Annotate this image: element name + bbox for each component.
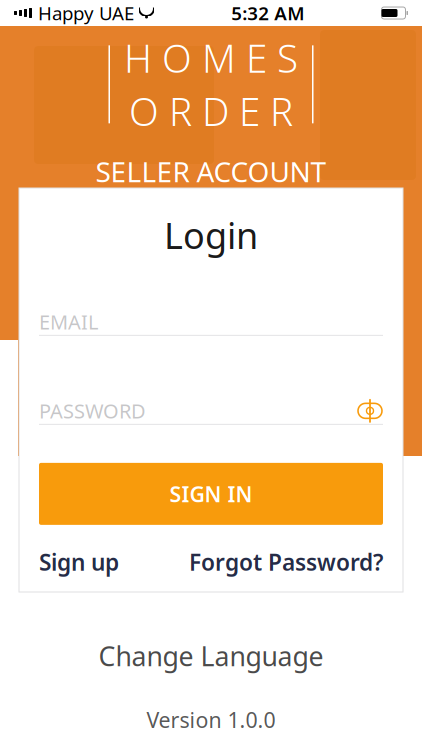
staticText: 5:32 AM (231, 1, 304, 25)
button[interactable]: Show password (357, 401, 383, 421)
staticText: PASSWORD (39, 398, 146, 424)
staticText: Sign up (39, 547, 119, 577)
button[interactable]: Sign up (39, 547, 119, 577)
staticText: H O M E S (124, 32, 298, 83)
staticText: Happy UAE (38, 1, 134, 25)
button[interactable]: SIGN IN (39, 463, 383, 525)
button[interactable]: Change Language (98, 638, 323, 674)
staticText: O R D E R (129, 85, 293, 137)
staticText: Change Language (98, 638, 323, 674)
staticText: SELLER ACCOUNT (95, 153, 326, 190)
staticText: EMAIL (39, 309, 98, 335)
staticText: Forgot Password? (189, 547, 383, 577)
staticText: SIGN IN (169, 480, 252, 508)
staticText: Login (164, 211, 258, 259)
staticText: Version 1.0.0 (146, 706, 275, 734)
button[interactable]: Forgot Password? (189, 547, 383, 577)
